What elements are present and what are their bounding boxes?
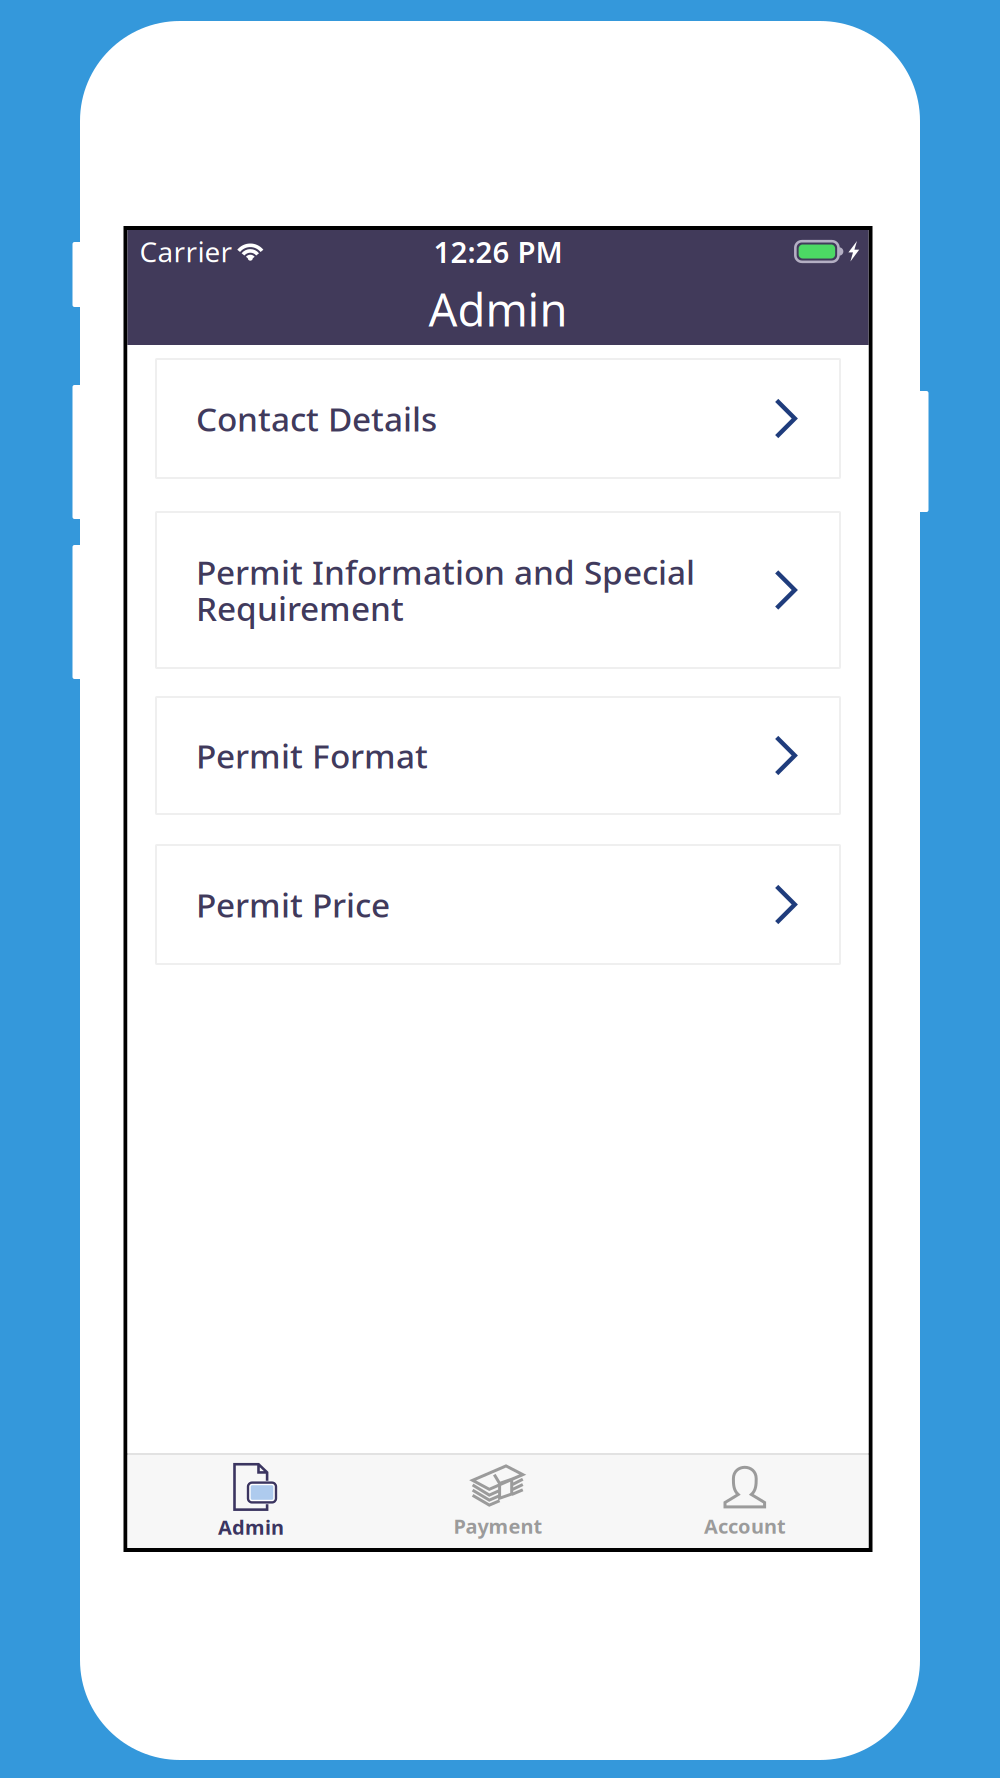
- button[interactable]: Account: [621, 1455, 868, 1548]
- staticText: Admin: [218, 1514, 284, 1540]
- staticText: Carrier: [139, 233, 232, 270]
- button[interactable]: Permit Information and Special Requireme…: [156, 512, 840, 668]
- button[interactable]: Permit Format: [156, 697, 840, 814]
- button[interactable]: Payment: [374, 1455, 621, 1548]
- button[interactable]: Admin: [127, 1455, 374, 1548]
- staticText: 12:26 PM: [433, 232, 562, 271]
- button[interactable]: Permit Price: [156, 845, 840, 964]
- button[interactable]: Contact Details: [156, 359, 840, 478]
- staticText: Permit Information and Special Requireme…: [196, 550, 695, 630]
- staticText: Permit Price: [196, 882, 390, 927]
- staticText: Account: [704, 1513, 786, 1539]
- staticText: Contact Details: [196, 396, 437, 441]
- staticText: Permit Format: [196, 733, 428, 778]
- staticText: Payment: [453, 1513, 542, 1539]
- staticText: Admin: [428, 279, 567, 339]
